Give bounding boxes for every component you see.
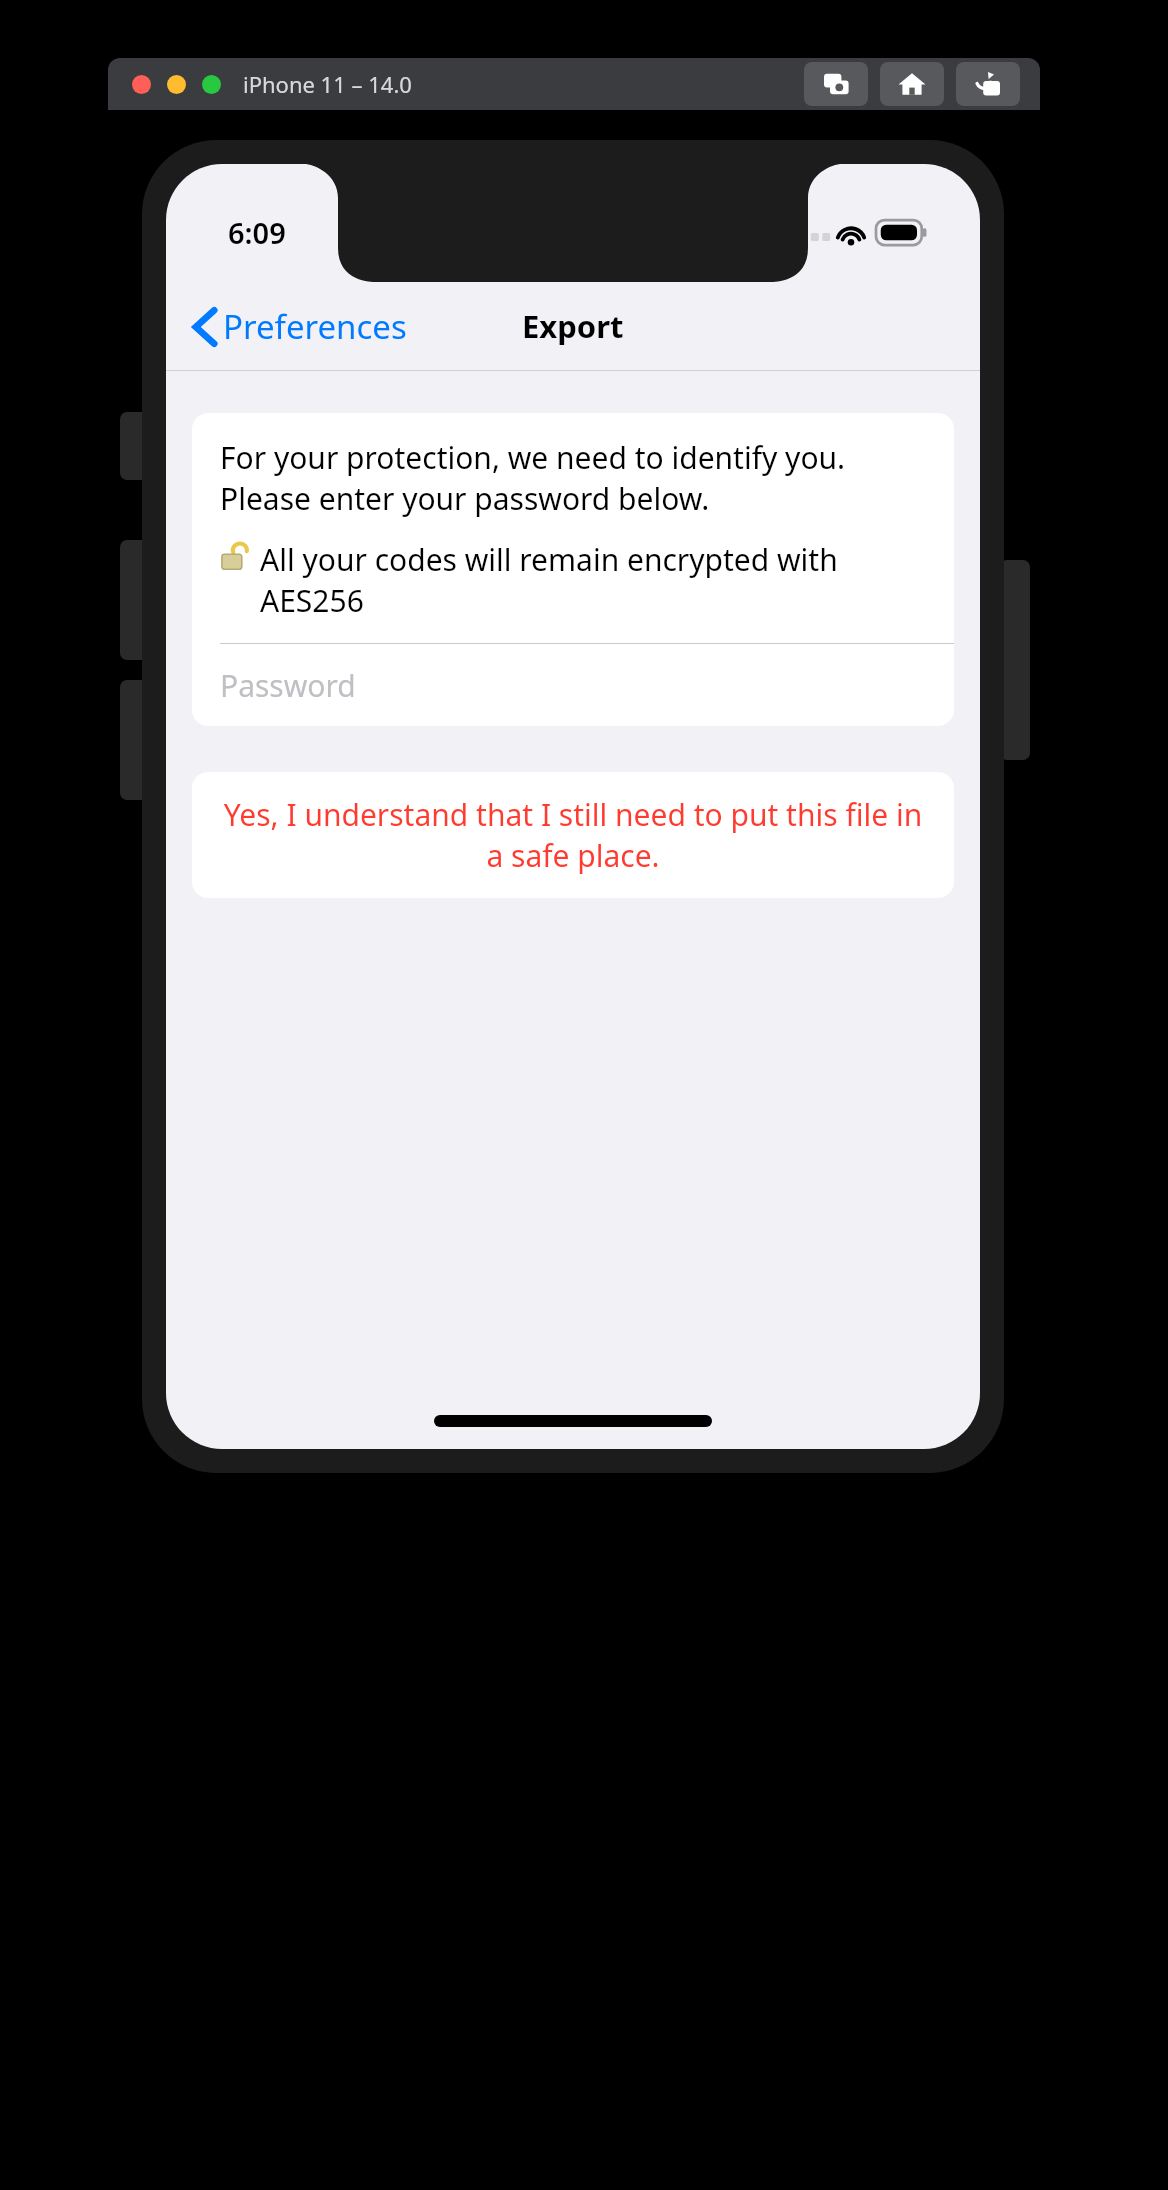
staticText: Preferences	[223, 304, 407, 349]
button[interactable]: Close	[132, 75, 151, 94]
staticText: 6:09	[228, 213, 286, 252]
staticText: Password	[220, 665, 356, 706]
staticText: Yes, I understand that I still need to p…	[216, 794, 930, 876]
staticText: All your codes will remain encrypted wit…	[260, 539, 930, 621]
button[interactable]: Share	[956, 62, 1020, 106]
button[interactable]: Yes, I understand that I still need to p…	[192, 772, 954, 898]
button[interactable]: Password	[192, 644, 954, 726]
button[interactable]: Home	[880, 62, 944, 106]
button[interactable]: Zoom	[202, 75, 221, 94]
button[interactable]: Take screenshot	[804, 62, 868, 106]
button[interactable]: Preferences	[186, 298, 415, 355]
button[interactable]: Minimize	[167, 75, 186, 94]
staticText: Export	[522, 305, 624, 347]
staticText: iPhone 11 – 14.0	[243, 69, 412, 99]
staticText: For your protection, we need to identify…	[220, 437, 930, 519]
